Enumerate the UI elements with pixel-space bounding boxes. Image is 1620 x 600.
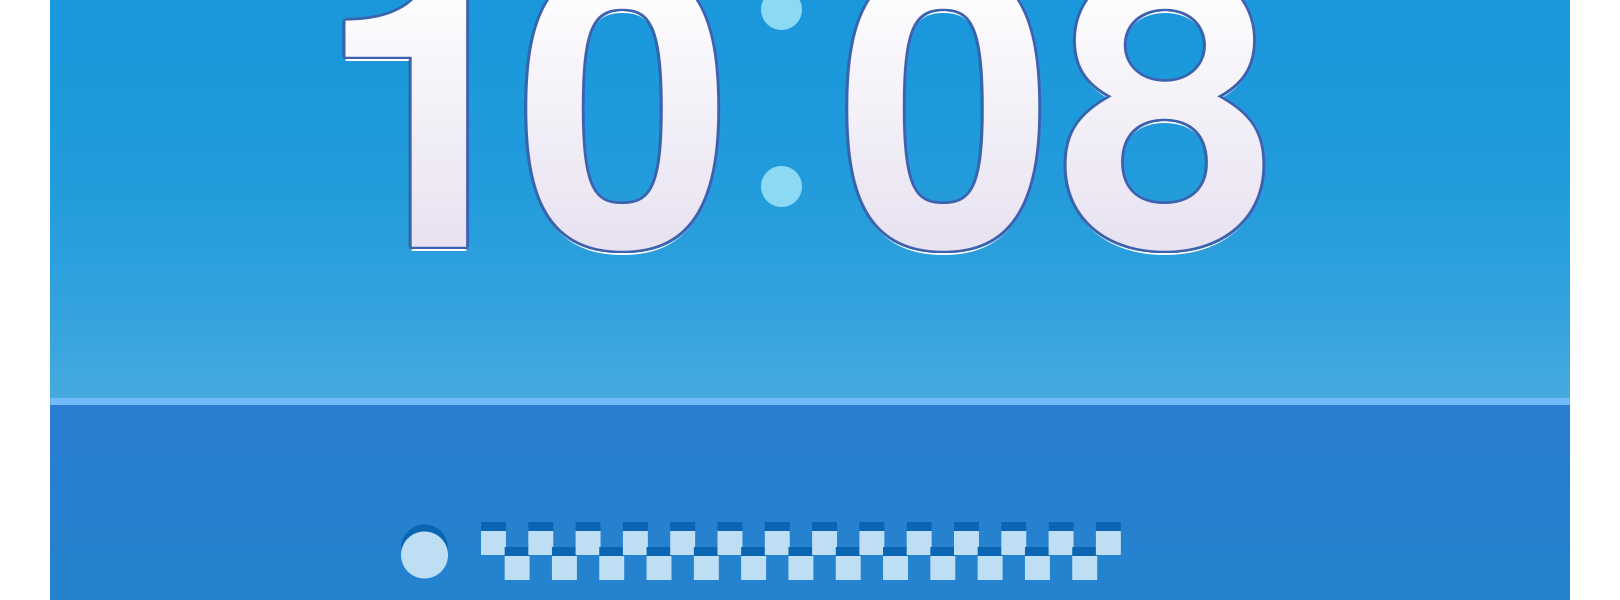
staticText: 1 bbox=[319, 0, 535, 368]
button[interactable] bbox=[50, 515, 1570, 600]
staticText: 8 bbox=[1058, 0, 1274, 363]
staticText: 1 bbox=[317, 0, 533, 368]
staticText: 8 bbox=[1056, 0, 1272, 364]
staticText: 0 bbox=[837, 0, 1053, 363]
staticText: 0 bbox=[516, 0, 732, 368]
staticText: 0 bbox=[518, 0, 734, 364]
staticText: 0 bbox=[835, 0, 1051, 368]
staticText: 0 bbox=[837, 0, 1053, 368]
staticText: 0 bbox=[516, 0, 732, 363]
staticText: 0 bbox=[518, 0, 734, 368]
staticText: 0 bbox=[839, 0, 1055, 364]
staticText: 8 bbox=[1058, 0, 1274, 370]
staticText: 0 bbox=[514, 0, 730, 368]
staticText: 8 bbox=[1060, 0, 1276, 368]
staticText: 0 bbox=[839, 0, 1055, 368]
staticText: 0 bbox=[840, 0, 1056, 366]
staticText: 0 bbox=[516, 0, 732, 370]
staticText: 0 bbox=[513, 0, 729, 366]
staticText: 8 bbox=[1055, 0, 1271, 366]
staticText: 0 bbox=[514, 0, 730, 364]
staticText: 8 bbox=[1061, 0, 1277, 366]
staticText: 1 bbox=[321, 0, 537, 368]
staticText: 0 bbox=[519, 0, 735, 366]
staticText: 0 bbox=[835, 0, 1051, 364]
staticText: 1 bbox=[319, 0, 535, 363]
staticText: 1 bbox=[316, 0, 532, 366]
staticText: 1 bbox=[321, 0, 537, 364]
staticText: 0 bbox=[834, 0, 1050, 366]
staticText: 8 bbox=[1056, 0, 1272, 368]
staticText: 8 bbox=[1058, 0, 1274, 368]
staticText: 1 bbox=[317, 0, 533, 364]
staticText: 8 bbox=[1060, 0, 1276, 364]
staticText: 1 bbox=[322, 0, 538, 366]
staticText: 0 bbox=[837, 0, 1053, 370]
staticText: 1 bbox=[319, 0, 535, 370]
